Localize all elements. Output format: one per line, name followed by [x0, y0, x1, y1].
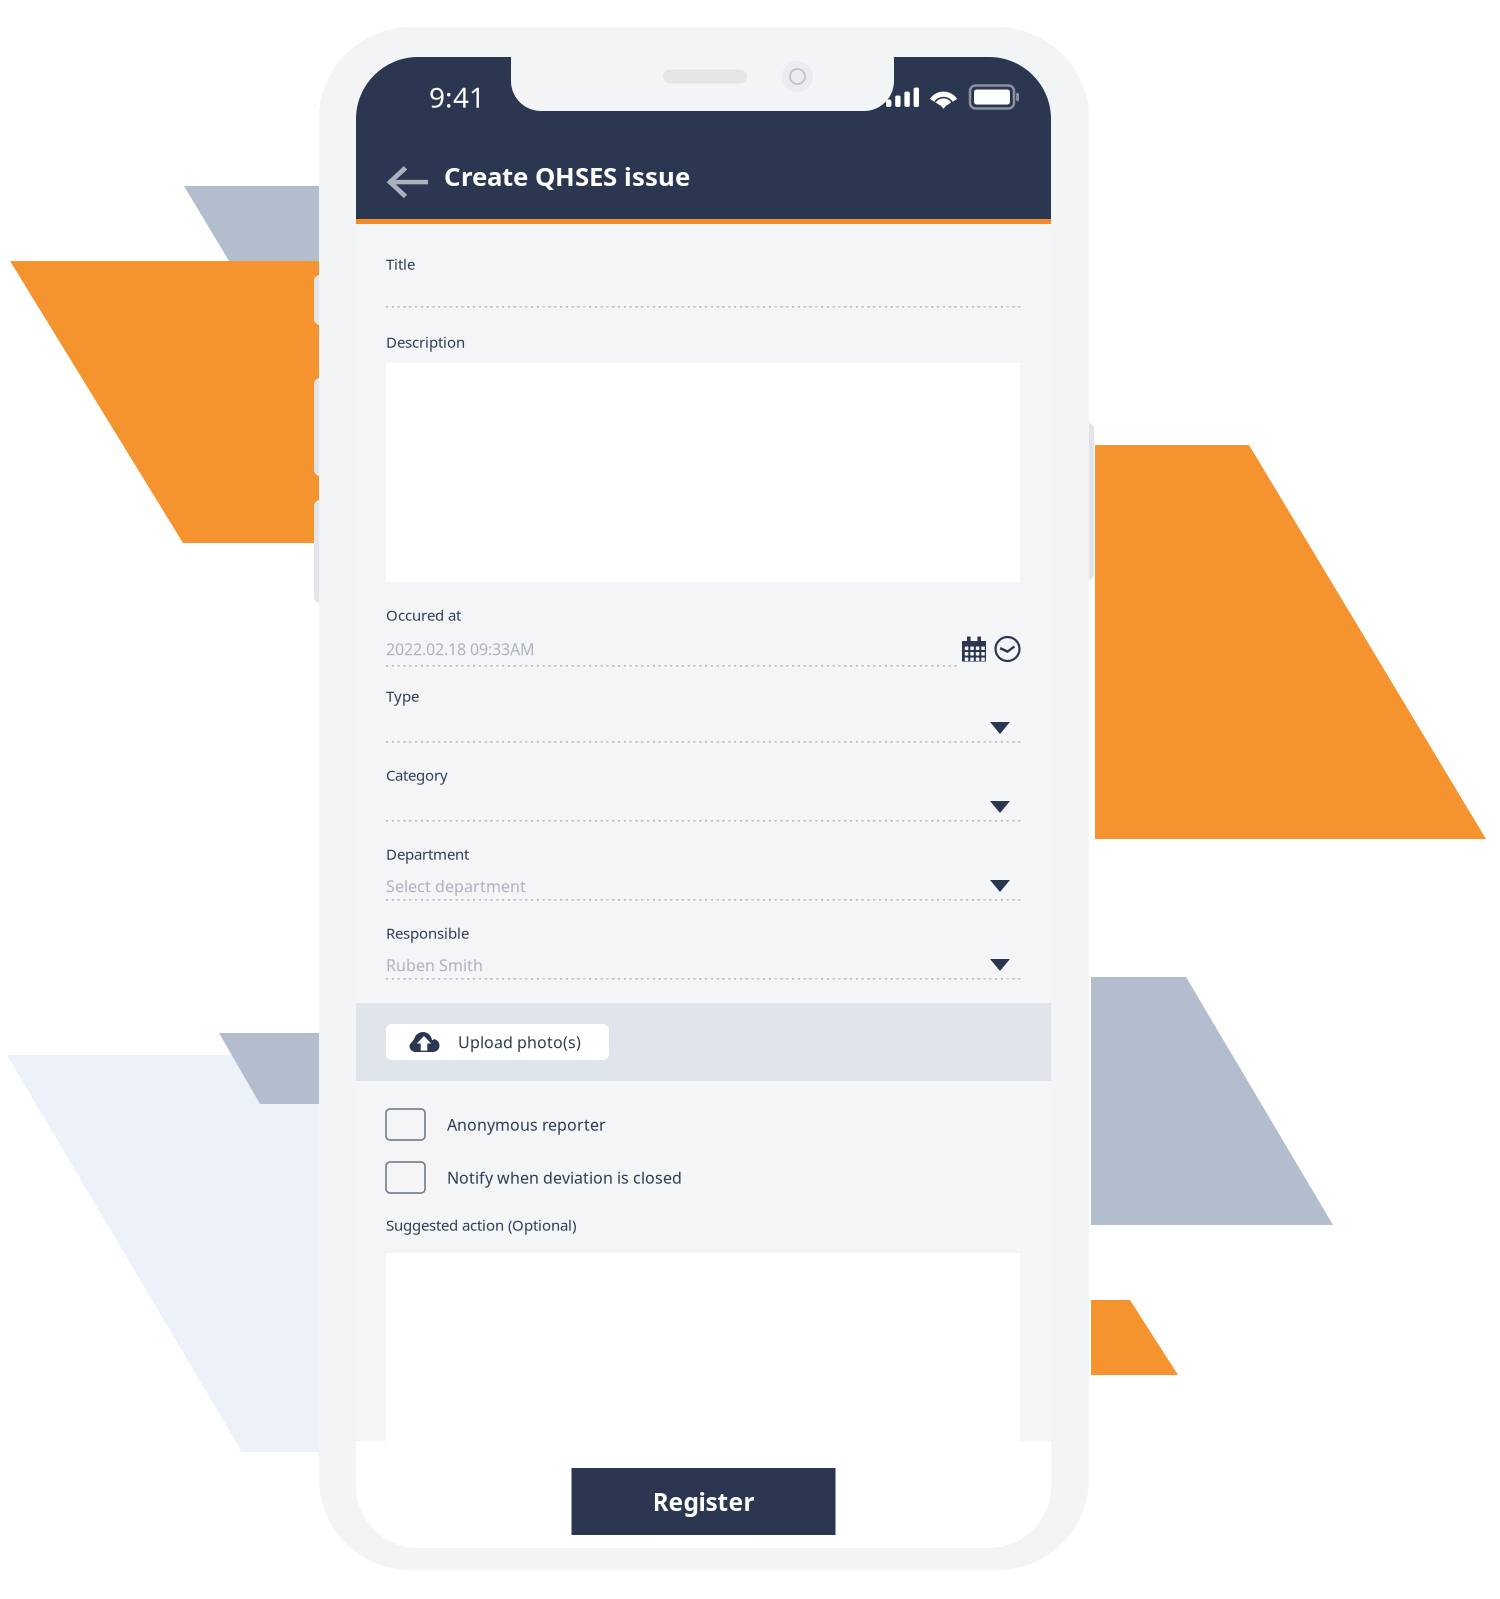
staticText: Select department: [386, 875, 526, 897]
staticText: Title: [386, 254, 415, 274]
staticText: Upload photo(s): [458, 1031, 581, 1053]
staticText: Create QHSES issue: [444, 158, 690, 193]
button[interactable]: Back: [356, 142, 444, 213]
button[interactable]: Pick time: [986, 636, 1020, 661]
staticText: Responsible: [386, 923, 469, 943]
staticText: Ruben Smith: [386, 954, 483, 976]
button[interactable]: Department: [386, 841, 1020, 920]
staticText: Type: [386, 686, 419, 706]
staticText: Occured at: [386, 605, 461, 625]
staticText: Notify when deviation is closed: [447, 1167, 682, 1188]
button[interactable]: Type: [386, 683, 1020, 762]
button[interactable]: Register: [571, 1468, 835, 1535]
button[interactable]: Notify when deviation is closed: [386, 1151, 1020, 1204]
button[interactable]: Upload photo(s): [386, 1024, 609, 1060]
button[interactable]: Responsible: [386, 920, 1020, 999]
staticText: Anonymous reporter: [447, 1114, 606, 1135]
button[interactable]: Category: [386, 762, 1020, 841]
staticText: Suggested action (Optional): [386, 1215, 576, 1235]
staticText: Description: [386, 332, 465, 352]
button[interactable]: Anonymous reporter: [386, 1098, 1020, 1151]
staticText: Department: [386, 844, 469, 864]
staticText: Category: [386, 765, 448, 785]
staticText: 2022.02.18 09:33AM: [386, 638, 535, 660]
button[interactable]: Pick date: [962, 636, 986, 661]
staticText: 9:41: [429, 78, 485, 116]
staticText: Register: [652, 1485, 754, 1518]
